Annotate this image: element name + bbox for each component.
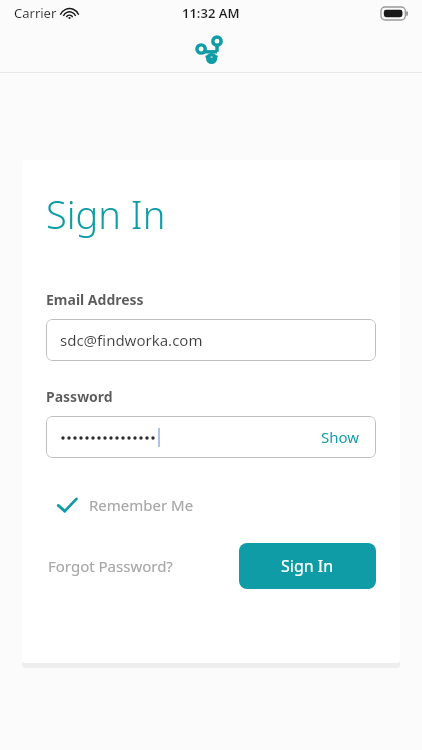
button[interactable]: Findworka logo <box>193 31 229 67</box>
staticText: 11:32 AM <box>182 4 240 22</box>
staticText: Sign In <box>281 555 334 577</box>
button[interactable]: sdc@findworka.com <box>46 319 376 361</box>
button[interactable]: Remember Me <box>46 491 202 519</box>
staticText: Email Address <box>46 290 144 309</box>
staticText: Show <box>321 427 360 447</box>
staticText: sdc@findworka.com <box>60 330 203 350</box>
staticText: Remember Me <box>89 495 194 515</box>
staticText: Password <box>46 387 113 406</box>
button[interactable]: Show <box>46 416 376 458</box>
button[interactable]: Forgot Password? <box>46 548 175 584</box>
staticText: Forgot Password? <box>48 556 173 576</box>
staticText: Sign In <box>46 188 166 240</box>
button[interactable]: Show <box>319 423 362 451</box>
button[interactable]: Sign In <box>239 543 376 589</box>
staticText: Carrier <box>14 4 57 22</box>
